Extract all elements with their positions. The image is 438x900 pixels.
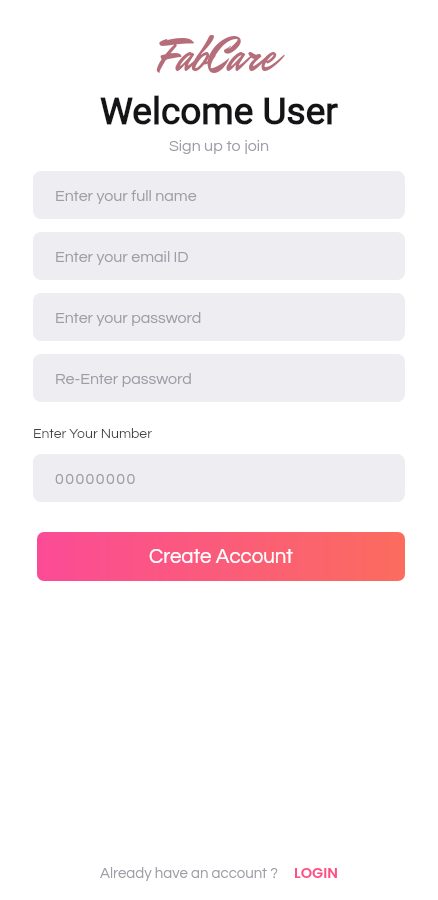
staticText: FabCare [159,19,276,92]
staticText: Welcome User [100,90,338,133]
button[interactable]: Enter your password [33,293,405,341]
button[interactable]: Re-Enter password [33,354,405,402]
staticText: LOGIN [294,863,338,883]
button[interactable]: Create Account [37,532,405,581]
staticText: Enter Your Number [33,427,152,441]
staticText: Enter your full name [55,188,197,204]
button[interactable]: Enter your full name [33,171,405,219]
staticText: Enter your password [55,310,202,326]
staticText: 00000000 [55,471,137,487]
staticText: Enter your email ID [55,249,189,265]
staticText: Re-Enter password [55,371,192,387]
button[interactable]: Enter your email ID [33,232,405,280]
staticText: Sign up to join [169,138,270,154]
staticText: Already have an account ? [100,866,278,881]
button[interactable]: 00000000 [33,454,405,502]
button[interactable]: LOGIN [294,863,338,883]
staticText: Create Account [149,546,293,567]
